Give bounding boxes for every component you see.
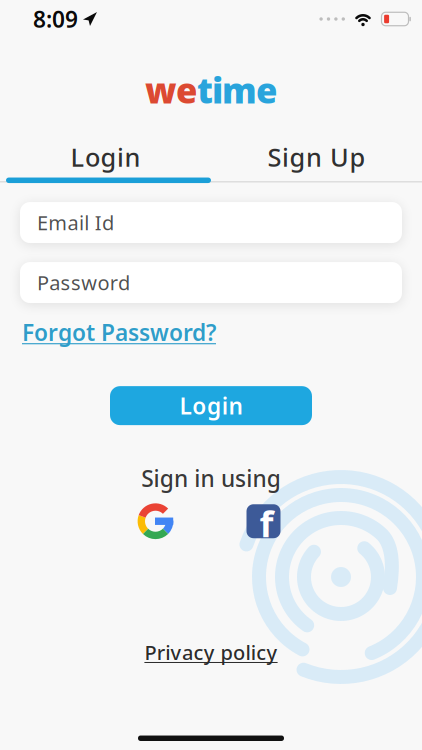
button[interactable]: Forgot Password?: [22, 317, 262, 347]
button[interactable]: Password: [20, 262, 402, 303]
button[interactable]: f: [246, 504, 280, 538]
button[interactable]: Login: [0, 143, 211, 171]
button[interactable]: Sign Up: [211, 143, 422, 171]
staticText: Password: [37, 269, 130, 296]
staticText: Email Id: [37, 209, 114, 236]
staticText: we: [145, 67, 197, 113]
button[interactable]: Login: [110, 386, 312, 425]
staticText: Login: [70, 140, 140, 174]
staticText: time: [197, 67, 277, 113]
staticText: Forgot Password?: [22, 317, 216, 347]
staticText: f: [259, 499, 273, 547]
staticText: Sign Up: [267, 140, 365, 174]
button[interactable]: [137, 503, 173, 539]
button[interactable]: Privacy policy: [144, 639, 278, 665]
staticText: Sign in using: [141, 463, 281, 493]
button[interactable]: Email Id: [20, 202, 402, 243]
staticText: Login: [179, 391, 243, 421]
staticText: Privacy policy: [144, 639, 278, 665]
staticText: 8:09: [33, 4, 78, 34]
